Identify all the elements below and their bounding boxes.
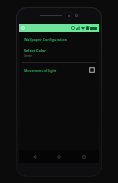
button[interactable]: Wallpaper Configuration [19,36,99,43]
button[interactable]: Home [50,150,68,163]
staticText: Select Color [24,48,46,53]
button[interactable]: Recent apps [75,150,93,163]
staticText: Wallpaper Configuration [24,37,67,42]
staticText: Green [24,54,33,58]
button[interactable]: Select Color [19,47,99,60]
staticText: Movement of light [24,68,57,73]
button[interactable]: Back [26,150,44,163]
button[interactable]: Movement of light [19,66,99,74]
other: Movement of light toggle [89,67,95,73]
